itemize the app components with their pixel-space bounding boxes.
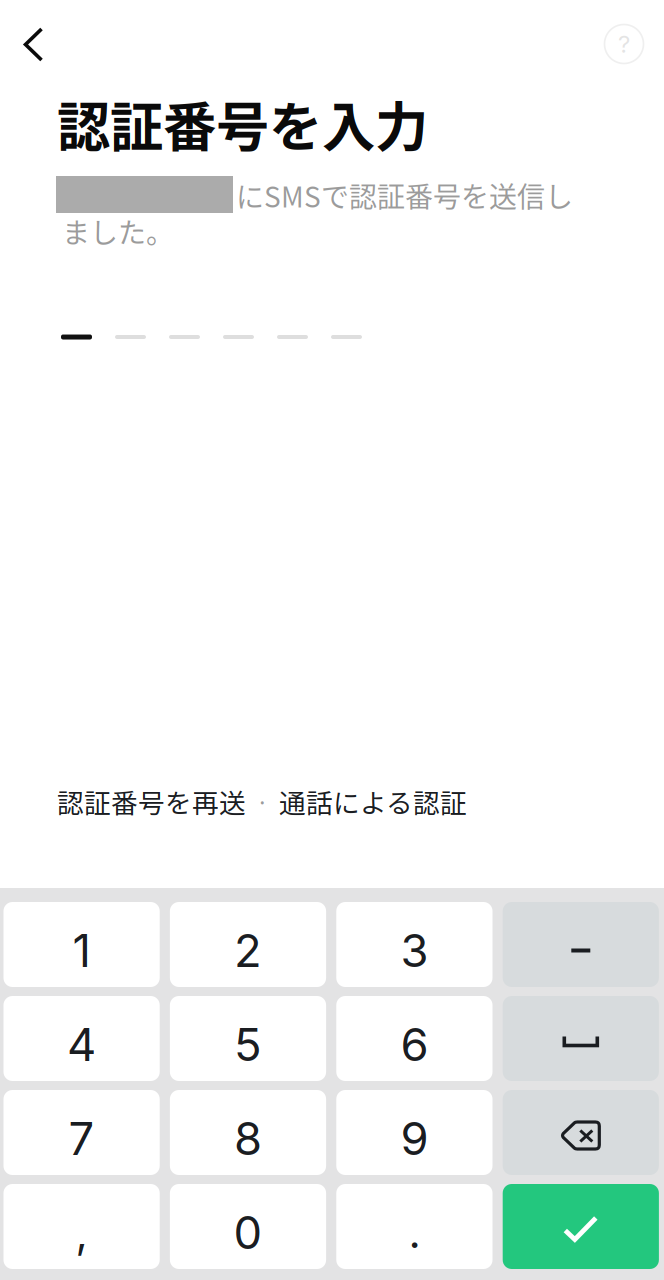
button[interactable]: 7 bbox=[3, 1090, 160, 1175]
button[interactable]: 通話による認証 bbox=[279, 782, 467, 821]
staticText: 1 bbox=[73, 923, 91, 978]
button[interactable] bbox=[503, 996, 659, 1081]
button[interactable]: Back bbox=[23, 27, 44, 62]
staticText: . bbox=[408, 1207, 420, 1258]
button[interactable]: 5 bbox=[170, 996, 326, 1081]
staticText: 認証番号を再送 bbox=[57, 782, 246, 821]
staticText: にSMSで認証番号を送信し bbox=[236, 175, 573, 215]
staticText: 5 bbox=[234, 1017, 262, 1072]
staticText: 7 bbox=[69, 1111, 95, 1166]
button[interactable]: , bbox=[3, 1184, 160, 1269]
button[interactable]: 3 bbox=[336, 902, 492, 987]
staticText: , bbox=[76, 1207, 88, 1258]
button[interactable]: Help bbox=[604, 24, 644, 64]
staticText: 6 bbox=[400, 1017, 428, 1072]
staticText: 3 bbox=[400, 923, 428, 978]
button[interactable] bbox=[503, 1090, 659, 1175]
staticText: 通話による認証 bbox=[279, 782, 467, 821]
staticText: 8 bbox=[234, 1111, 262, 1166]
button[interactable] bbox=[503, 902, 659, 987]
staticText: ました。 bbox=[62, 211, 174, 251]
button[interactable]: 1 bbox=[3, 902, 160, 987]
button[interactable]: 認証番号を再送 bbox=[57, 782, 246, 821]
staticText: 9 bbox=[400, 1111, 428, 1166]
staticText: 2 bbox=[234, 923, 262, 978]
staticText: 認証番号を入力 bbox=[57, 85, 428, 162]
button[interactable]: 8 bbox=[170, 1090, 326, 1175]
button[interactable]: 6 bbox=[336, 996, 492, 1081]
button[interactable]: 2 bbox=[170, 902, 326, 987]
button[interactable]: 9 bbox=[336, 1090, 492, 1175]
staticText: 4 bbox=[67, 1017, 96, 1072]
staticText: ? bbox=[618, 29, 630, 58]
staticText: · bbox=[246, 785, 279, 818]
button[interactable] bbox=[503, 1184, 659, 1269]
button[interactable]: 0 bbox=[170, 1184, 326, 1269]
button[interactable]: . bbox=[336, 1184, 492, 1269]
staticText: 0 bbox=[233, 1205, 262, 1260]
button[interactable]: 4 bbox=[3, 996, 160, 1081]
